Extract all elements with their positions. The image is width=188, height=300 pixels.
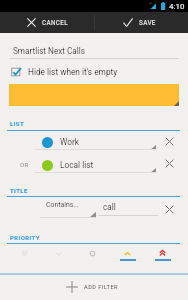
button[interactable]: Priority level	[75, 245, 110, 261]
button[interactable]: Local list	[35, 157, 156, 173]
staticText: PRIORITY	[10, 234, 40, 241]
button[interactable]: Remove filter	[165, 205, 174, 214]
staticText: Local list	[60, 160, 94, 170]
button[interactable]: ADD FILTER	[0, 274, 188, 300]
staticText: call	[103, 202, 116, 212]
staticText: CANCEL	[42, 19, 68, 26]
button[interactable]: Remove filter	[165, 159, 174, 168]
staticText: OR	[20, 161, 29, 168]
button[interactable]: Contains...	[40, 200, 96, 217]
button[interactable]: Work	[35, 134, 156, 150]
staticText: Hide list when it's empty	[28, 67, 118, 77]
staticText: SAVE	[139, 19, 156, 26]
staticText: Smartlist Next Calls	[13, 46, 86, 56]
staticText: ADD FILTER	[84, 284, 118, 291]
button[interactable]: Priority level	[145, 245, 180, 261]
button[interactable]: Hide list when it's empty	[11, 66, 118, 78]
staticText: LIST	[10, 120, 25, 127]
button[interactable]: call	[103, 202, 116, 212]
staticText: Work	[60, 137, 79, 147]
button[interactable]: SAVE	[94, 12, 188, 33]
button[interactable]: Remove filter	[165, 137, 174, 146]
staticText: Contains...	[46, 201, 79, 209]
button[interactable]: Priority level	[110, 245, 145, 261]
button[interactable]: CANCEL	[0, 12, 93, 33]
staticText: 4:10	[169, 2, 185, 11]
staticText: TITLE	[10, 187, 28, 194]
